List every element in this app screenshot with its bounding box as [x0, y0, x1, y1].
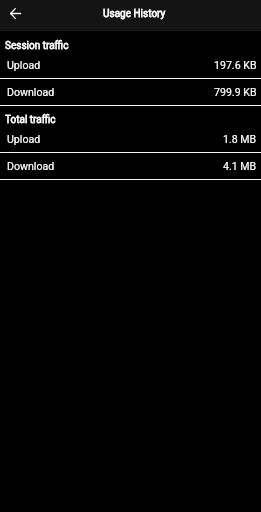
staticText: 1.8 MB: [223, 133, 257, 145]
staticText: 799.9 KB: [214, 86, 257, 98]
staticText: Download: [7, 86, 55, 98]
button[interactable]: Download: [0, 152, 261, 179]
staticText: Usage History: [103, 8, 166, 20]
button[interactable]: Back: [0, 0, 31, 26]
button[interactable]: Upload: [0, 125, 261, 152]
staticText: Session traffic: [5, 40, 69, 52]
staticText: 4.1 MB: [223, 160, 257, 172]
staticText: 197.6 KB: [214, 59, 257, 71]
button[interactable]: Upload: [0, 51, 261, 78]
staticText: Total traffic: [5, 114, 56, 126]
staticText: Upload: [7, 133, 41, 145]
button[interactable]: Download: [0, 78, 261, 105]
staticText: Upload: [7, 59, 41, 71]
staticText: Download: [7, 160, 55, 172]
